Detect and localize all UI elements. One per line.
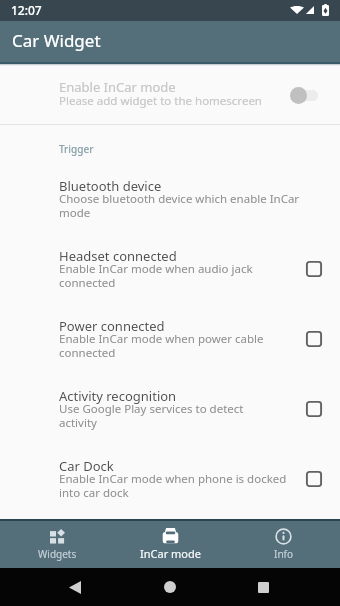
button[interactable]: InCar mode (114, 519, 227, 568)
staticText: Bluetooth device (59, 177, 162, 195)
staticText: Please add widget to the homescreen (59, 93, 262, 109)
button[interactable]: Car Dock (0, 457, 340, 519)
staticText: Activity recognition (59, 387, 177, 405)
staticText: Enable InCar mode when phone is docked i… (59, 471, 287, 500)
button[interactable]: Power connected (0, 317, 340, 387)
staticText: Widgets (38, 547, 77, 561)
button[interactable]: Bluetooth device (0, 177, 340, 247)
staticText: 12:07 (11, 2, 42, 18)
staticText: Power connected (59, 317, 165, 335)
staticText: Info (274, 547, 294, 561)
staticText: Use Google Play services to detect activ… (59, 401, 244, 430)
button[interactable]: Info (227, 519, 340, 568)
staticText: Enable InCar mode when audio jack connec… (59, 261, 253, 290)
staticText: InCar mode (140, 546, 201, 561)
staticText: Trigger (59, 142, 94, 156)
button[interactable]: Activity recognition (0, 387, 340, 457)
staticText: Car Widget (12, 29, 101, 52)
button[interactable]: Home (156, 573, 184, 601)
staticText: Car Dock (59, 457, 114, 475)
button[interactable]: Back (61, 573, 89, 601)
button[interactable]: Recents (249, 573, 277, 601)
staticText: Headset connected (59, 247, 177, 265)
staticText: Choose bluetooth device which enable InC… (59, 191, 300, 220)
button[interactable]: Enable InCar mode (0, 66, 340, 124)
staticText: Enable InCar mode when power cable conne… (59, 331, 264, 360)
button[interactable]: Widgets (0, 519, 114, 568)
button[interactable]: Headset connected (0, 247, 340, 317)
staticText: Enable InCar mode (59, 78, 176, 96)
